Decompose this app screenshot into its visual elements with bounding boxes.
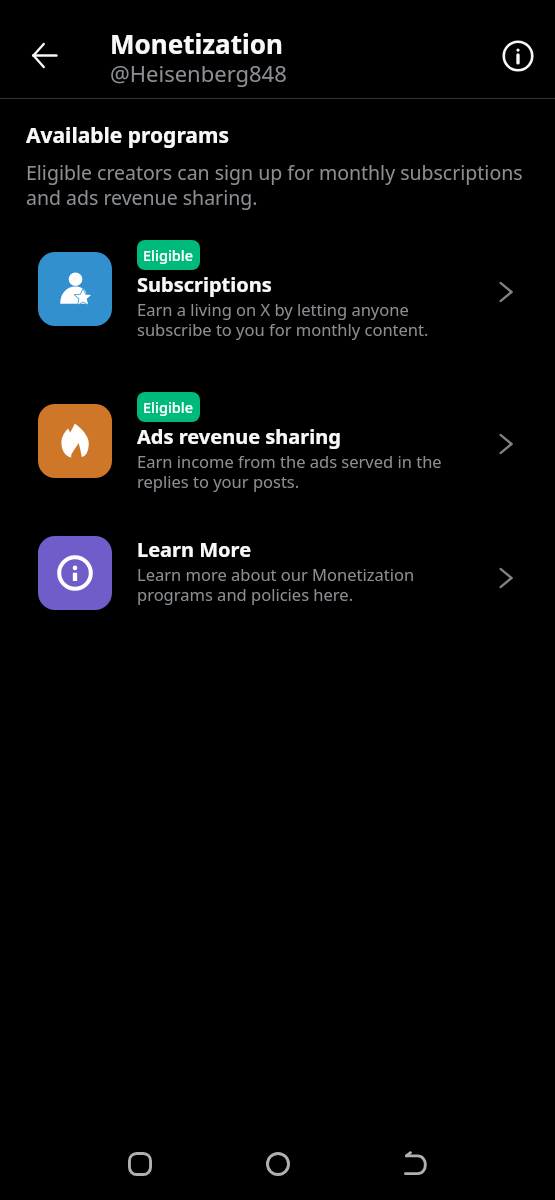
staticText: Eligible xyxy=(143,397,194,417)
staticText: Learn More xyxy=(137,536,252,563)
staticText: Available programs xyxy=(26,121,229,150)
staticText: Eligible creators can sign up for monthl… xyxy=(26,159,527,211)
button[interactable]: Information xyxy=(495,33,541,79)
button[interactable]: Recent apps xyxy=(114,1138,166,1190)
staticText: Eligible xyxy=(143,245,194,265)
button[interactable]: Eligible xyxy=(0,394,555,495)
staticText: Earn a living on X by letting anyone sub… xyxy=(137,298,437,341)
button[interactable]: Learn More xyxy=(0,538,555,612)
staticText: Learn more about our Monetization progra… xyxy=(137,563,437,606)
staticText: @Heisenberg848 xyxy=(110,58,287,88)
staticText: Earn income from the ads served in the r… xyxy=(137,450,457,493)
staticText: Monetization xyxy=(110,26,283,61)
staticText: Ads revenue sharing xyxy=(137,423,341,450)
button[interactable]: Back xyxy=(390,1138,442,1190)
button[interactable]: Back xyxy=(20,31,68,79)
staticText: Subscriptions xyxy=(137,271,272,298)
button[interactable]: Eligible xyxy=(0,242,555,343)
button[interactable]: Home xyxy=(252,1138,304,1190)
